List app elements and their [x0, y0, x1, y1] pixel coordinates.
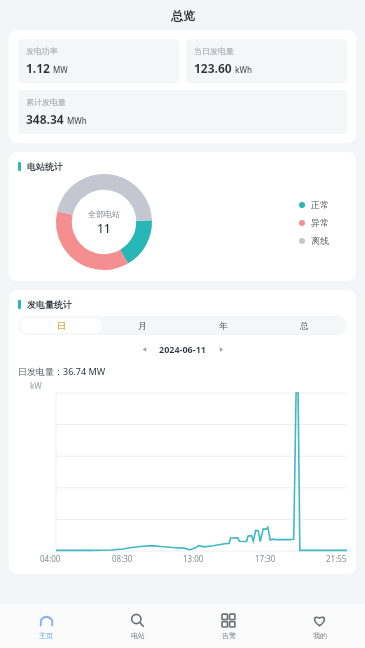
staticText: 年: [219, 320, 228, 331]
staticText: 异常: [311, 217, 329, 228]
button[interactable]: 月: [102, 318, 183, 333]
button[interactable]: 年: [183, 318, 264, 333]
staticText: MW: [53, 64, 68, 75]
staticText: 当日发电量: [194, 46, 234, 56]
staticText: 1.12: [26, 60, 50, 76]
staticText: 累计发电量: [26, 97, 66, 107]
staticText: 08:30: [112, 553, 133, 564]
staticText: kW: [30, 380, 42, 391]
button[interactable]: 告警: [183, 604, 274, 648]
staticText: 2024-06-11: [159, 343, 206, 355]
button[interactable]: 主页: [0, 604, 92, 648]
staticText: 21:55: [326, 553, 347, 564]
button[interactable]: 发电功率: [18, 39, 179, 83]
staticText: 离线: [311, 235, 329, 246]
staticText: 04:00: [40, 553, 61, 564]
staticText: 电站: [131, 631, 145, 640]
staticText: 总览: [171, 8, 195, 23]
staticText: 我的: [313, 631, 327, 640]
staticText: 告警: [222, 631, 236, 640]
staticText: 总: [300, 320, 309, 331]
button[interactable]: 总: [264, 318, 345, 333]
staticText: 发电量统计: [27, 299, 72, 310]
staticText: 主页: [39, 631, 53, 640]
button[interactable]: 日: [20, 318, 102, 333]
staticText: 电站统计: [27, 161, 63, 172]
button[interactable]: 当日发电量: [186, 39, 347, 83]
staticText: 全部电站: [88, 209, 120, 219]
staticText: 日: [57, 320, 66, 331]
staticText: 发电功率: [26, 46, 58, 56]
button[interactable]: 我的: [274, 604, 365, 648]
staticText: 123.60: [194, 60, 232, 76]
button[interactable]: Next day: [214, 342, 228, 356]
staticText: kWh: [235, 64, 253, 75]
staticText: 17:30: [255, 553, 276, 564]
staticText: 13:00: [183, 553, 204, 564]
button[interactable]: Previous day: [137, 342, 151, 356]
button[interactable]: 累计发电量: [18, 90, 347, 134]
staticText: 月: [138, 320, 147, 331]
staticText: 11: [97, 220, 111, 236]
staticText: MWh: [67, 115, 87, 126]
staticText: 348.34: [26, 111, 64, 127]
staticText: 日发电量：36.74 MW: [18, 365, 106, 377]
button[interactable]: 电站: [92, 604, 183, 648]
staticText: 正常: [311, 199, 329, 210]
